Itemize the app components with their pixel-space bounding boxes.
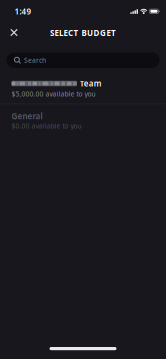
button[interactable]: Team xyxy=(0,75,166,104)
staticText: 1:49 xyxy=(15,6,32,17)
staticText: $0.00 available to you xyxy=(11,121,81,130)
staticText: $5,000.00 available to you xyxy=(11,89,95,98)
staticText: Team xyxy=(80,78,102,89)
button[interactable]: General xyxy=(0,104,166,133)
staticText: SELECT BUDGET xyxy=(50,28,116,38)
button[interactable]: Search xyxy=(6,52,159,68)
button[interactable]: Close xyxy=(2,20,26,44)
staticText: Search xyxy=(24,56,46,65)
staticText: General xyxy=(11,111,42,121)
